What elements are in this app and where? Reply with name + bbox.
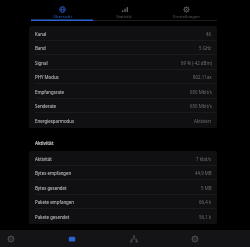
staticText: 7 kbit/s <box>196 156 212 162</box>
staticText: Einstellungen <box>173 14 200 20</box>
staticText: Übersicht <box>53 14 72 20</box>
staticText: 66,4 k <box>199 199 212 205</box>
staticText: 69 % (-42 dBm) <box>181 60 212 66</box>
staticText: PHY Modus <box>35 74 59 80</box>
staticText: Empfangsrate <box>35 89 64 95</box>
staticText: Energiesparmodus <box>35 118 75 124</box>
staticText: 5 GHz <box>199 45 212 51</box>
staticText: 802.11ax <box>193 74 212 80</box>
button[interactable]: Band <box>29 41 217 55</box>
button[interactable]: Kanal <box>29 26 217 41</box>
staticText: Signal <box>35 60 48 66</box>
button[interactable]: Übersicht <box>31 0 93 22</box>
button[interactable]: Pakete empfangen <box>29 195 217 209</box>
staticText: Band <box>35 45 46 51</box>
button[interactable]: Signal <box>29 55 217 70</box>
staticText: Pakete empfangen <box>35 199 75 205</box>
button[interactable]: Configure <box>186 230 203 247</box>
staticText: 650 Mbit/s <box>190 103 212 109</box>
button[interactable]: Aktivität <box>29 151 217 166</box>
staticText: Senderate <box>35 103 57 109</box>
button[interactable]: Devices <box>125 230 142 247</box>
staticText: Aktivität <box>35 140 54 146</box>
staticText: 650 Mbit/s <box>190 89 212 95</box>
button[interactable]: Router <box>63 230 80 247</box>
button[interactable]: Statistik <box>93 0 155 22</box>
button[interactable]: Senderate <box>29 99 217 113</box>
button[interactable]: PHY Modus <box>29 70 217 84</box>
staticText: 44,9 MB <box>195 170 212 176</box>
staticText: 5 MB <box>201 185 212 191</box>
staticText: Aktiviert <box>194 118 212 124</box>
button[interactable]: Bytes gesendet <box>29 180 217 195</box>
button[interactable]: Bytes empfangen <box>29 166 217 180</box>
staticText: Bytes empfangen <box>35 170 72 176</box>
button[interactable]: Settings <box>2 230 19 247</box>
staticText: 56,1 k <box>199 214 212 220</box>
button[interactable]: Empfangsrate <box>29 84 217 99</box>
staticText: Bytes gesendet <box>35 185 67 191</box>
button[interactable]: Pakete gesendet <box>29 209 217 224</box>
button[interactable]: Energiesparmodus <box>29 113 217 128</box>
staticText: 46 <box>206 31 212 37</box>
staticText: Aktivität <box>35 156 52 162</box>
staticText: Pakete gesendet <box>35 214 70 220</box>
button[interactable]: Einstellungen <box>155 0 217 22</box>
staticText: Kanal <box>35 31 47 37</box>
staticText: Statistik <box>116 14 132 20</box>
